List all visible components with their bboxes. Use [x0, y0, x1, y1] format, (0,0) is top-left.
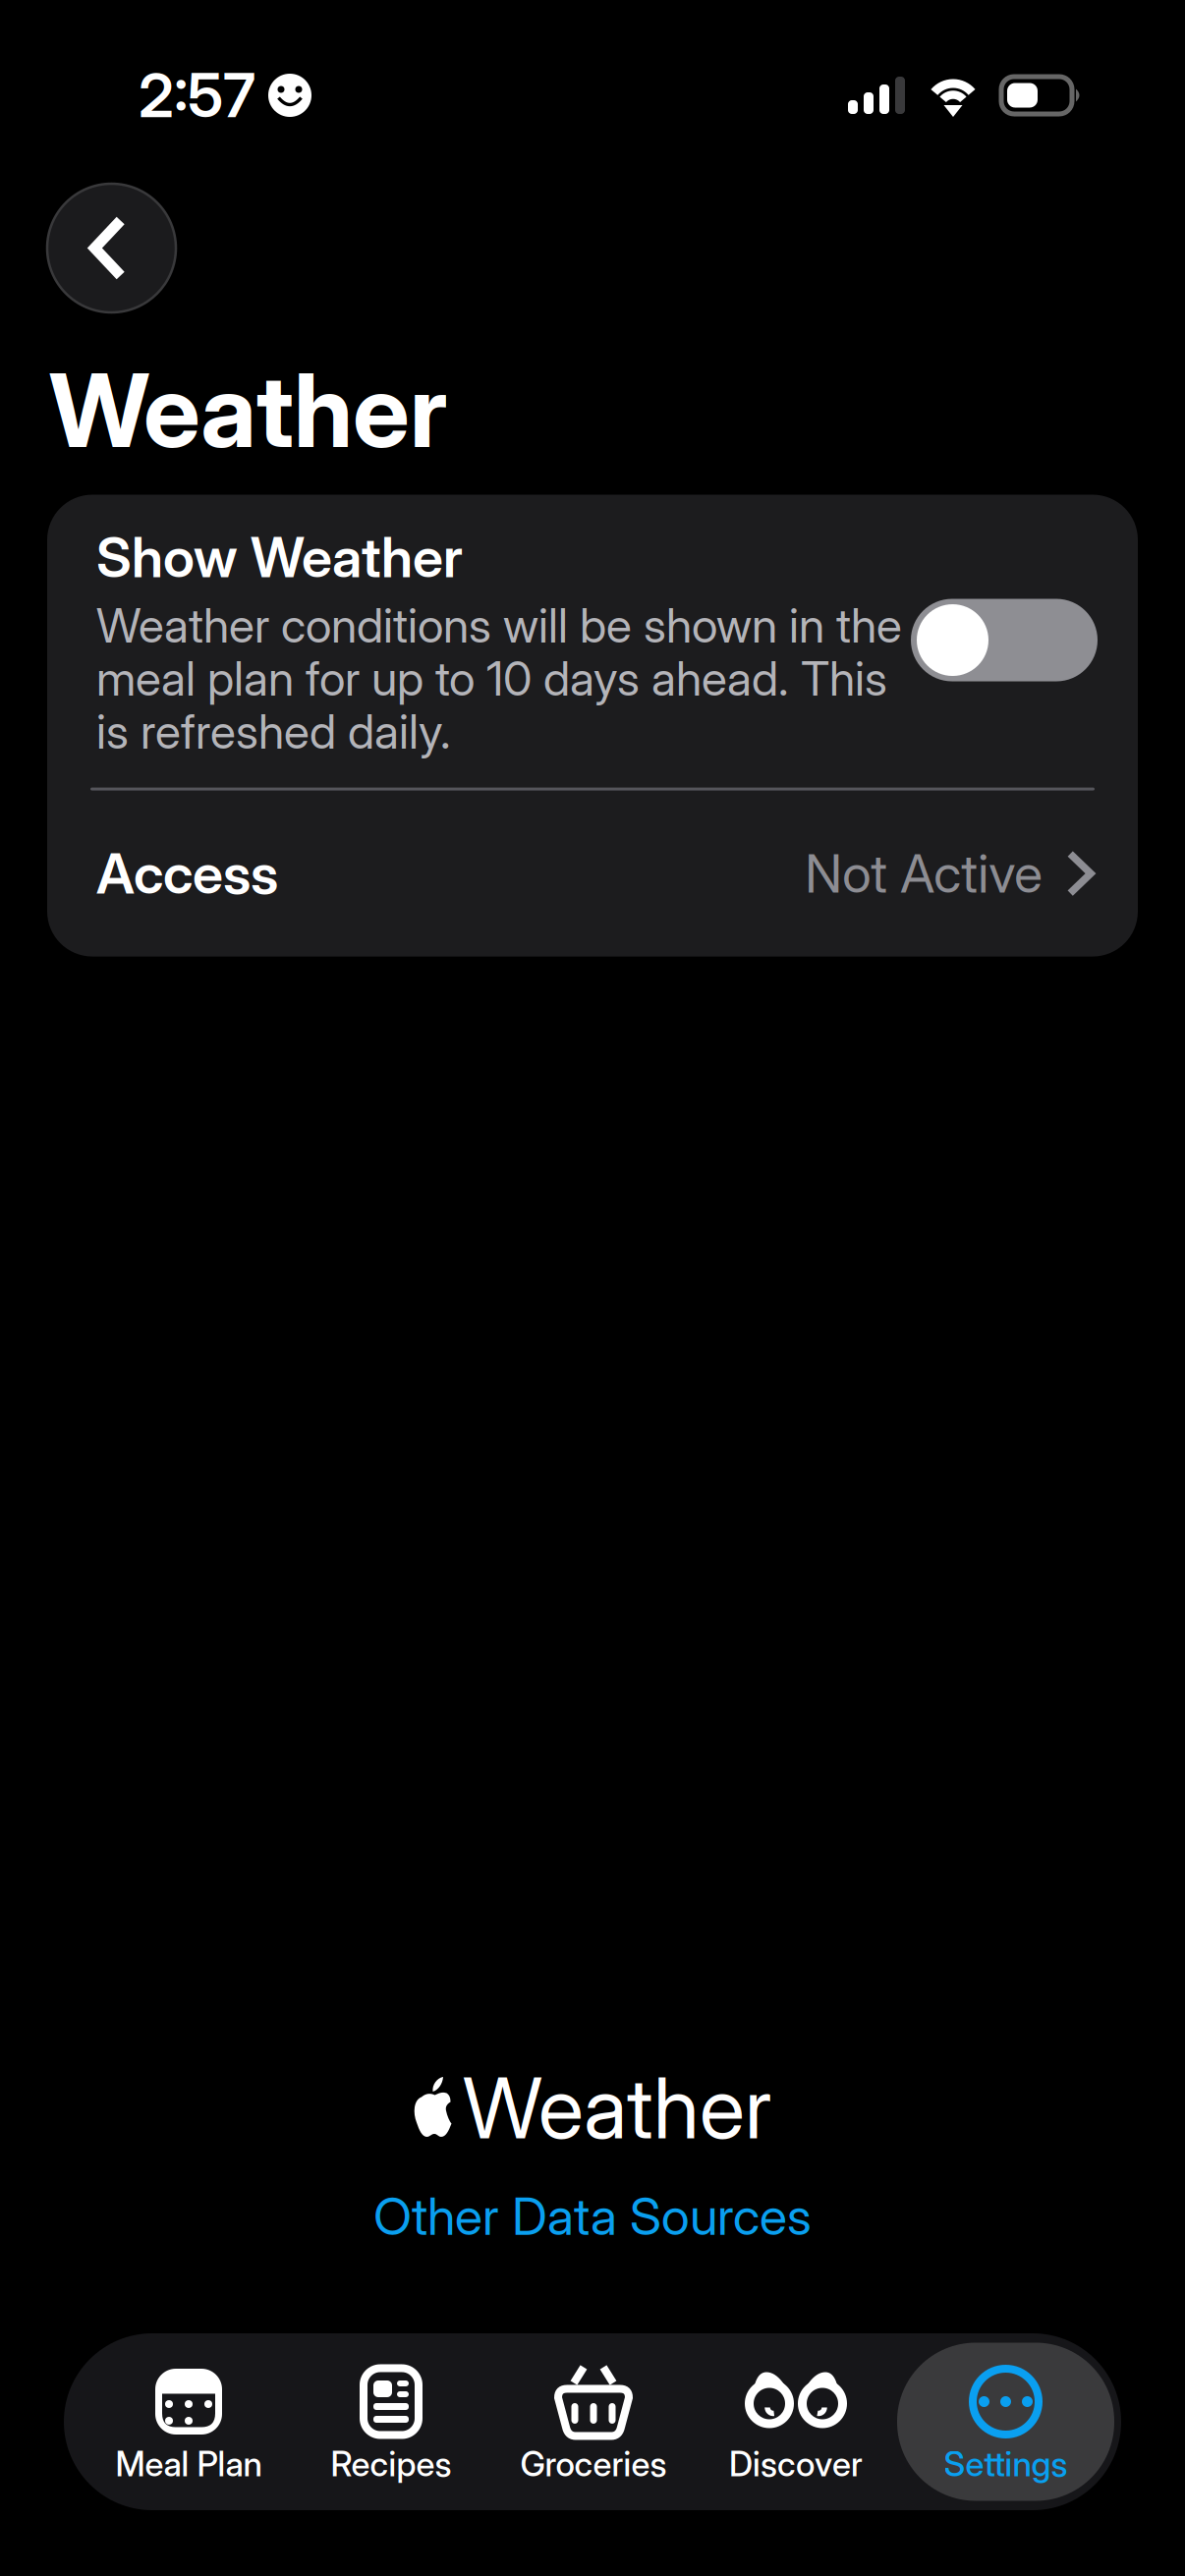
staticText: Weather [49, 354, 447, 467]
button[interactable]: Show Weather [911, 599, 1098, 681]
staticText: Groceries [520, 2445, 667, 2483]
button[interactable]: Other Data Sources [373, 2187, 812, 2245]
staticText: Show Weather [96, 526, 463, 588]
button[interactable]: Settings [897, 2343, 1114, 2501]
staticText: Access [96, 843, 278, 904]
button[interactable]: Groceries [492, 2343, 695, 2501]
button[interactable]: Discover [695, 2343, 897, 2501]
staticText: Weather conditions will be shown in the … [96, 599, 902, 758]
staticText: Other Data Sources [373, 2187, 812, 2245]
button[interactable]: Meal Plan [87, 2343, 290, 2501]
staticText: Not Active [805, 844, 1043, 903]
button[interactable]: Access [47, 790, 1138, 957]
staticText: Weather [463, 2061, 772, 2155]
button[interactable]: Back [47, 184, 176, 312]
staticText: Settings [944, 2445, 1068, 2483]
staticText: Meal Plan [115, 2445, 262, 2483]
staticText: Discover [729, 2445, 863, 2483]
button[interactable]: Recipes [290, 2343, 492, 2501]
staticText: 2:57 [139, 61, 255, 129]
staticText: Recipes [331, 2445, 451, 2483]
